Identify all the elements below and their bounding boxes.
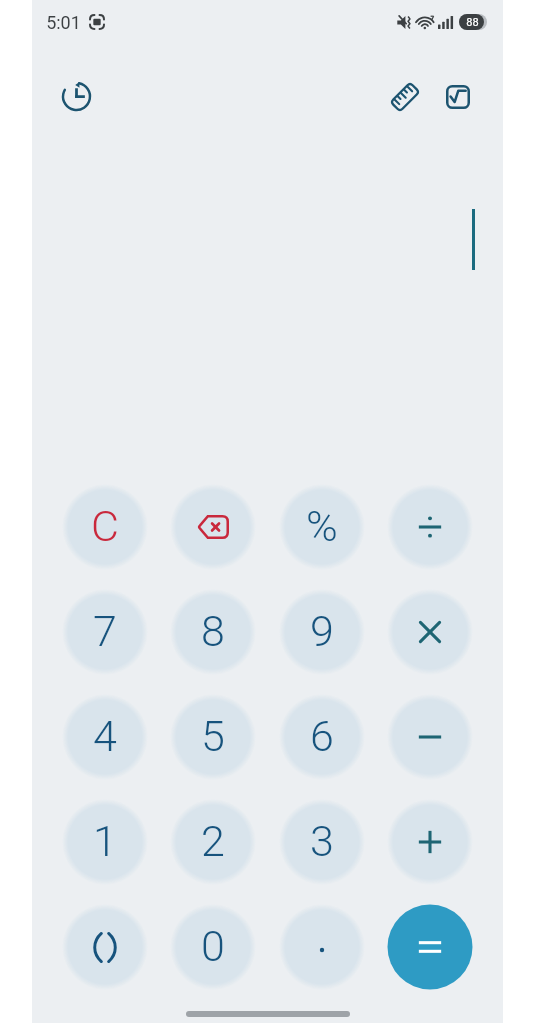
button[interactable]: Scientific mode (434, 73, 482, 121)
button[interactable]: Unit converter (381, 73, 429, 121)
staticText: 7 (93, 606, 117, 656)
button[interactable] (62, 904, 148, 990)
button[interactable]: Plus (387, 799, 473, 885)
button[interactable]: Equals (387, 904, 473, 990)
button[interactable]: Decimal point (279, 904, 365, 990)
button[interactable]: 4 (62, 694, 148, 780)
staticText: 8 (201, 606, 225, 656)
button[interactable]: 0 (170, 904, 256, 990)
staticText: 1 (93, 816, 117, 866)
button[interactable]: History (52, 71, 100, 119)
staticText: 9 (310, 606, 334, 656)
button[interactable]: 2 (170, 799, 256, 885)
button[interactable]: 6 (279, 694, 365, 780)
staticText: 5:01 (46, 12, 81, 33)
button[interactable]: 7 (62, 589, 148, 675)
staticText: 88 (466, 16, 479, 29)
button[interactable]: Multiply (387, 589, 473, 675)
staticText: 4 (93, 711, 117, 761)
staticText: 5 (201, 711, 225, 761)
staticText: % (306, 501, 338, 551)
button[interactable]: % (279, 484, 365, 570)
button[interactable]: 3 (279, 799, 365, 885)
button[interactable]: 5 (170, 694, 256, 780)
staticText: 0 (201, 921, 225, 971)
staticText: 3 (310, 816, 334, 866)
staticText: C (91, 501, 119, 551)
staticText: 6 (310, 711, 334, 761)
button[interactable]: 1 (62, 799, 148, 885)
button[interactable]: 8 (170, 589, 256, 675)
button[interactable]: C (62, 484, 148, 570)
button[interactable]: Backspace (170, 484, 256, 570)
button[interactable]: 9 (279, 589, 365, 675)
staticText: 2 (201, 816, 225, 866)
button[interactable]: Minus (387, 694, 473, 780)
button[interactable]: Divide (387, 484, 473, 570)
